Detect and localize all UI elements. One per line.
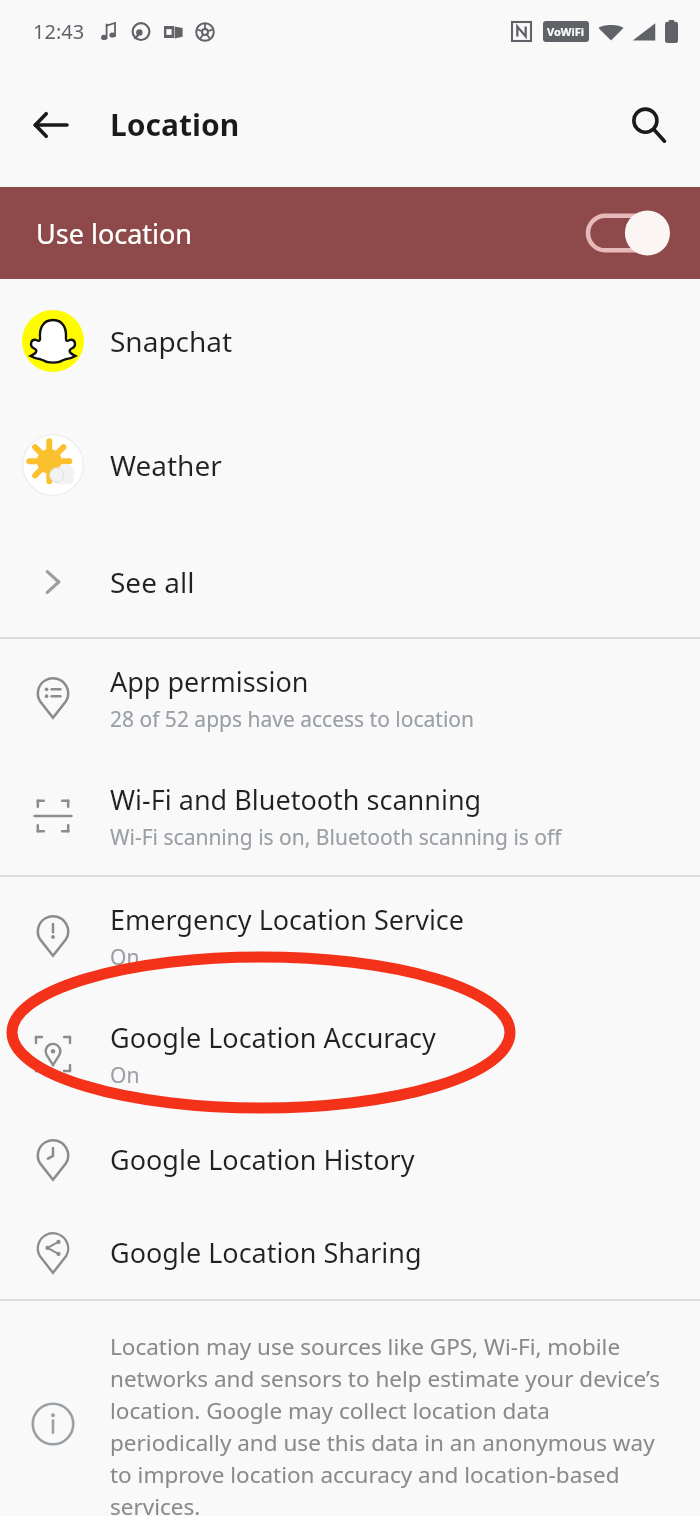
staticText: Weather — [110, 446, 222, 484]
staticText: See all — [110, 563, 195, 601]
button[interactable]: Google Location Accuracy — [0, 995, 700, 1113]
staticText: Google Location History — [110, 1141, 415, 1178]
staticText: On — [110, 1061, 140, 1090]
staticText: Wi-Fi and Bluetooth scanning — [110, 781, 482, 818]
button[interactable]: Search — [616, 92, 682, 158]
staticText: Google Location Sharing — [110, 1234, 422, 1271]
staticText: Google Location Accuracy — [110, 1019, 436, 1056]
button[interactable]: Back — [18, 92, 84, 158]
button[interactable]: Google Location Sharing — [0, 1206, 700, 1299]
button[interactable]: Emergency Location Service — [0, 877, 700, 995]
staticText: Snapchat — [110, 322, 233, 360]
staticText: Location — [110, 104, 240, 145]
button[interactable]: See all — [0, 527, 700, 637]
staticText: Wi-Fi scanning is on, Bluetooth scanning… — [110, 823, 562, 852]
button[interactable]: Snapchat — [0, 279, 700, 403]
staticText: 28 of 52 apps have access to location — [110, 705, 474, 734]
staticText: App permission — [110, 663, 309, 700]
button[interactable]: App permission — [0, 639, 700, 757]
button[interactable]: Weather — [0, 403, 700, 527]
staticText: Emergency Location Service — [110, 901, 465, 938]
button[interactable]: Use location — [0, 187, 700, 279]
staticText: 12:43 — [33, 18, 85, 45]
button[interactable]: Wi-Fi and Bluetooth scanning — [0, 757, 700, 875]
staticText: On — [110, 943, 140, 972]
staticText: Use location — [36, 215, 588, 252]
staticText: VoWiFi — [547, 24, 585, 39]
button[interactable]: Google Location History — [0, 1113, 700, 1206]
staticText: Location may use sources like GPS, Wi-Fi… — [110, 1331, 676, 1516]
